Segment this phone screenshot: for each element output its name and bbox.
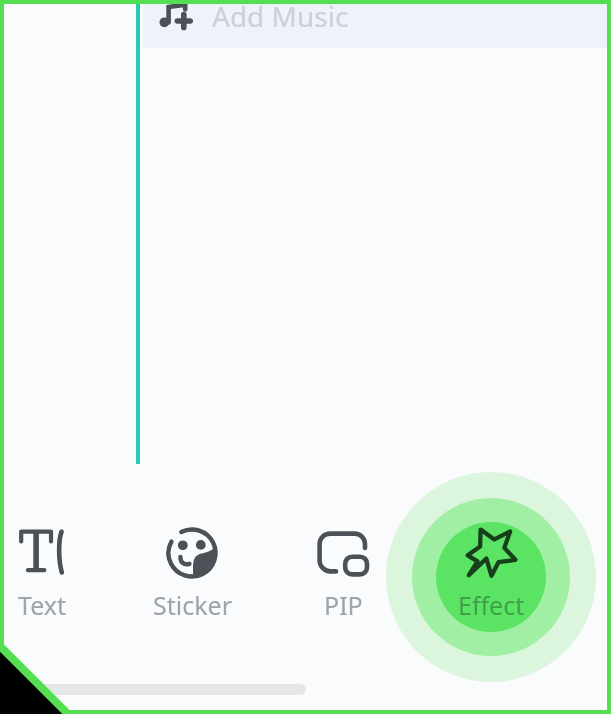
staticText: Text (18, 588, 67, 622)
button[interactable]: PIP (278, 513, 408, 628)
staticText: PIP (324, 588, 363, 622)
staticText: Add Music (212, 0, 349, 35)
button[interactable]: Text (0, 515, 107, 628)
button[interactable]: Sticker (127, 513, 257, 628)
button[interactable]: Effect (386, 472, 596, 682)
staticText: Sticker (153, 588, 232, 622)
staticText: Effect (458, 588, 525, 622)
button[interactable]: Add Music (140, 0, 611, 48)
